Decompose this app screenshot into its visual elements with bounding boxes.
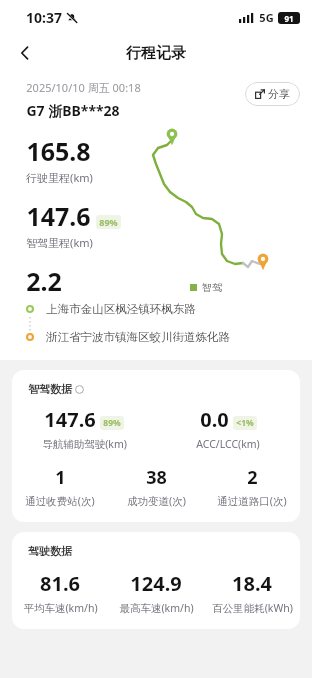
staticText: G7 浙BB***28 xyxy=(26,101,120,120)
staticText: 浙江省宁波市镇海区蛟川街道炼化路 xyxy=(46,330,230,344)
button[interactable]: 81.6 xyxy=(12,570,108,615)
staticText: 通过收费站(次) xyxy=(25,494,95,508)
staticText: 2025/10/10 周五 00:18 xyxy=(26,80,141,95)
button[interactable]: 1 xyxy=(12,465,108,508)
staticText: 最高车速(km/h) xyxy=(119,601,194,615)
staticText: 智驾里程(km) xyxy=(26,235,93,250)
staticText: 行程记录 xyxy=(126,44,186,63)
button[interactable]: 38 xyxy=(108,465,204,508)
staticText: 0.0 xyxy=(200,406,229,433)
staticText: 2 xyxy=(247,465,258,490)
staticText: 导航辅助驾驶(km) xyxy=(42,437,127,451)
button[interactable]: Back xyxy=(8,36,42,70)
staticText: 5G xyxy=(259,10,274,25)
staticText: 2.2 xyxy=(26,264,62,298)
staticText: 平均车速(km/h) xyxy=(23,601,98,615)
staticText: 成功变道(次) xyxy=(127,494,186,508)
staticText: 行驶里程(km) xyxy=(26,170,93,185)
staticText: 上海市金山区枫泾镇环枫东路 xyxy=(46,302,196,316)
staticText: ACC/LCC(km) xyxy=(196,437,260,451)
button[interactable]: 147.6 xyxy=(12,406,156,451)
button[interactable]: 2 xyxy=(204,465,300,508)
staticText: 147.6 xyxy=(26,199,91,233)
staticText: 驾驶数据 xyxy=(28,544,72,558)
staticText: 165.8 xyxy=(26,134,91,168)
staticText: 智驾数据 xyxy=(28,382,72,396)
staticText: 38 xyxy=(146,465,167,490)
staticText: 81.6 xyxy=(40,570,80,597)
button[interactable]: 124.9 xyxy=(108,570,204,615)
staticText: 分享 xyxy=(268,87,290,101)
button[interactable]: 0.0 xyxy=(156,406,300,451)
staticText: 通过道路口(次) xyxy=(217,494,287,508)
staticText: 10:37 xyxy=(26,8,62,27)
staticText: 147.6 xyxy=(44,406,96,433)
button[interactable]: 分享 xyxy=(245,82,300,106)
staticText: 18.4 xyxy=(232,570,272,597)
staticText: 91 xyxy=(284,13,294,24)
staticText: 89% xyxy=(103,417,121,429)
button[interactable]: 18.4 xyxy=(204,570,300,615)
staticText: 124.9 xyxy=(130,570,182,597)
staticText: 智驾 xyxy=(202,281,222,294)
staticText: 1 xyxy=(55,465,66,490)
staticText: 89% xyxy=(99,216,118,228)
staticText: <1% xyxy=(236,417,254,429)
staticText: 百公里能耗(kWh) xyxy=(212,601,293,615)
